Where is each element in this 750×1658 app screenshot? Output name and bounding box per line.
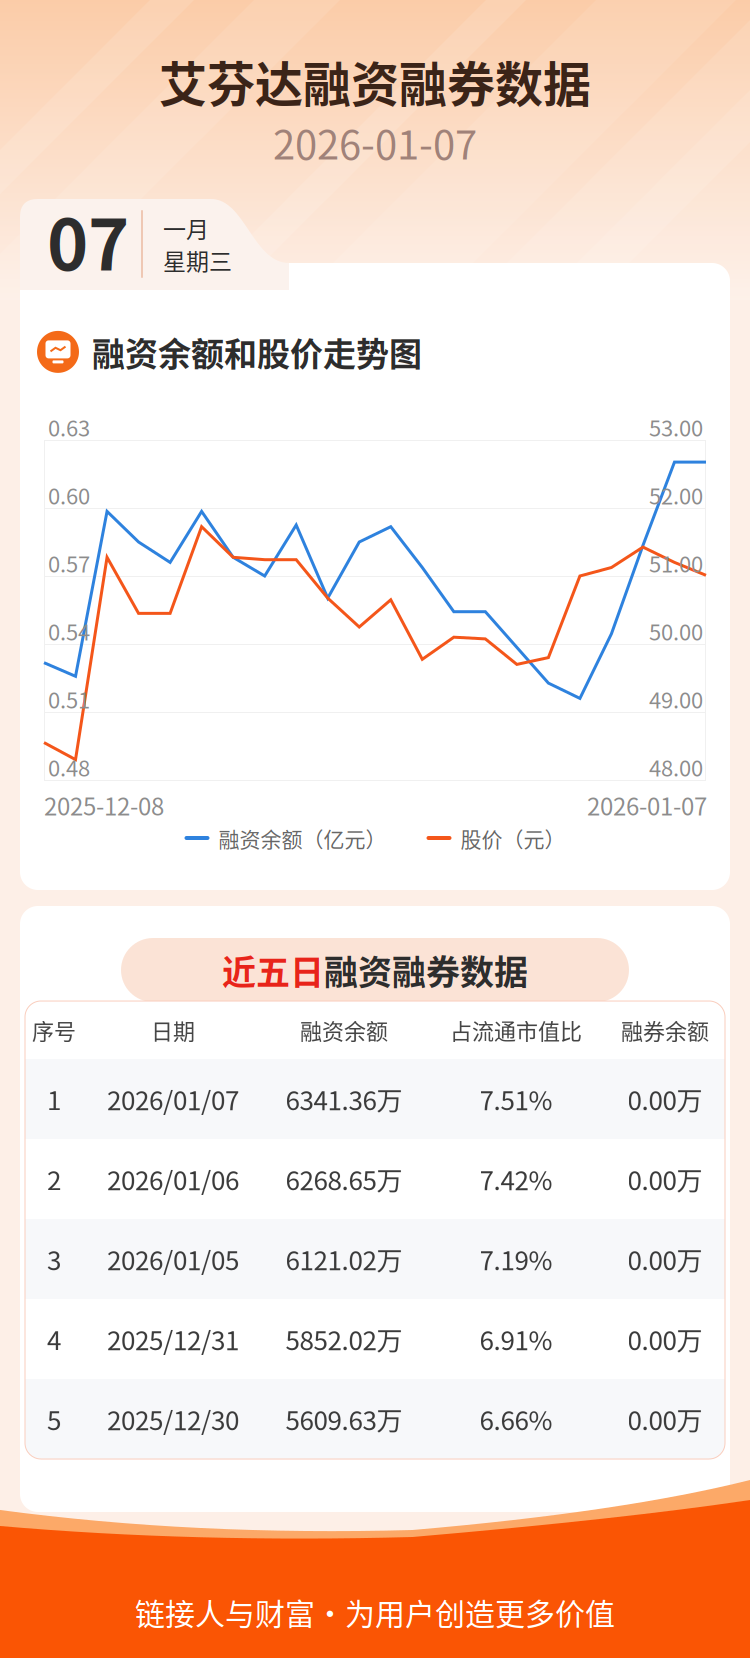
staticText: 0.51 (48, 683, 90, 715)
staticText: 7.42% (479, 1160, 552, 1198)
staticText: 序号 (32, 1014, 76, 1046)
staticText: 6121.02万 (285, 1240, 402, 1278)
staticText: 艾芬达融资融券数据 (159, 46, 591, 116)
staticText: 2026/01/05 (107, 1240, 239, 1278)
staticText: 07 (47, 189, 129, 291)
staticText: 融券余额 (621, 1014, 709, 1046)
staticText: 6.66% (479, 1400, 552, 1438)
staticText: 49.00 (649, 683, 703, 715)
staticText: 0.60 (48, 479, 90, 511)
staticText: 0.48 (48, 751, 90, 783)
staticText: 0.00万 (627, 1320, 702, 1358)
staticText: 52.00 (649, 479, 703, 511)
staticText: 近五日 (222, 945, 324, 995)
staticText: 1 (47, 1080, 61, 1118)
staticText: 融资融券数据 (324, 945, 528, 995)
staticText: 链接人与财富·为用户创造更多价值 (135, 1590, 615, 1634)
staticText: 2025/12/30 (107, 1400, 239, 1438)
staticText: 5609.63万 (285, 1400, 402, 1438)
staticText: 融资余额和股价走势图 (92, 328, 422, 376)
staticText: 0.57 (48, 547, 90, 579)
staticText: 星期三 (163, 243, 232, 277)
staticText: 2026-01-07 (587, 788, 707, 822)
staticText: 占流通市值比 (450, 1014, 582, 1046)
staticText: 0.00万 (627, 1400, 702, 1438)
staticText: 0.00万 (627, 1160, 702, 1198)
staticText: 2026/01/07 (107, 1080, 239, 1118)
staticText: 6268.65万 (285, 1160, 402, 1198)
staticText: 2026/01/06 (107, 1160, 239, 1198)
staticText: 4 (47, 1320, 61, 1358)
staticText: 7.51% (479, 1080, 552, 1118)
staticText: 7.19% (479, 1240, 552, 1278)
staticText: 5 (47, 1400, 61, 1438)
staticText: 5852.02万 (285, 1320, 402, 1358)
staticText: 53.00 (649, 411, 703, 443)
staticText: 51.00 (649, 547, 703, 579)
staticText: 48.00 (649, 751, 703, 783)
staticText: 6341.36万 (285, 1080, 402, 1118)
staticText: 一月 (163, 211, 209, 245)
staticText: 股价（元） (460, 823, 565, 853)
staticText: 50.00 (649, 615, 703, 647)
staticText: 2 (47, 1160, 61, 1198)
staticText: 2025-12-08 (44, 788, 164, 822)
staticText: 日期 (151, 1014, 195, 1046)
staticText: 6.91% (479, 1320, 552, 1358)
staticText: 2026-01-07 (273, 113, 477, 171)
staticText: 0.00万 (627, 1080, 702, 1118)
staticText: 3 (47, 1240, 61, 1278)
staticText: 融资余额 (300, 1014, 388, 1046)
staticText: 0.00万 (627, 1240, 702, 1278)
staticText: 融资余额（亿元） (218, 823, 386, 853)
staticText: 0.63 (48, 411, 90, 443)
staticText: 0.54 (48, 615, 90, 647)
staticText: 2025/12/31 (107, 1320, 239, 1358)
